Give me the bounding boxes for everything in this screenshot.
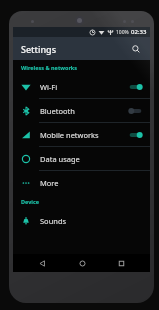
button[interactable]: Toggle on <box>128 82 143 92</box>
staticText: More <box>40 178 59 188</box>
button[interactable]: Mobile networks <box>13 123 150 146</box>
staticText: 02:33 <box>131 28 147 36</box>
button[interactable]: Wi-Fi <box>13 75 150 98</box>
staticText: Settings <box>21 43 57 55</box>
button[interactable]: Data usage <box>13 147 150 170</box>
button[interactable]: Bluetooth <box>13 99 150 122</box>
staticText: Sounds <box>40 216 67 226</box>
staticText: Wireless & networks <box>21 64 78 71</box>
staticText: Device <box>21 198 40 205</box>
button[interactable]: Home <box>71 254 93 272</box>
button[interactable]: Toggle on <box>128 130 143 140</box>
staticText: Wi-Fi <box>40 82 58 92</box>
button[interactable]: Recents <box>110 254 132 272</box>
staticText: 100% <box>116 29 129 36</box>
button[interactable]: Back <box>31 254 53 272</box>
button[interactable]: More <box>13 171 150 194</box>
staticText: Data usage <box>40 154 80 164</box>
button[interactable]: Sounds <box>13 209 150 232</box>
staticText: Mobile networks <box>40 130 99 140</box>
button[interactable]: Search <box>128 41 144 57</box>
button[interactable]: Toggle off <box>128 106 143 116</box>
staticText: Bluetooth <box>40 106 75 116</box>
